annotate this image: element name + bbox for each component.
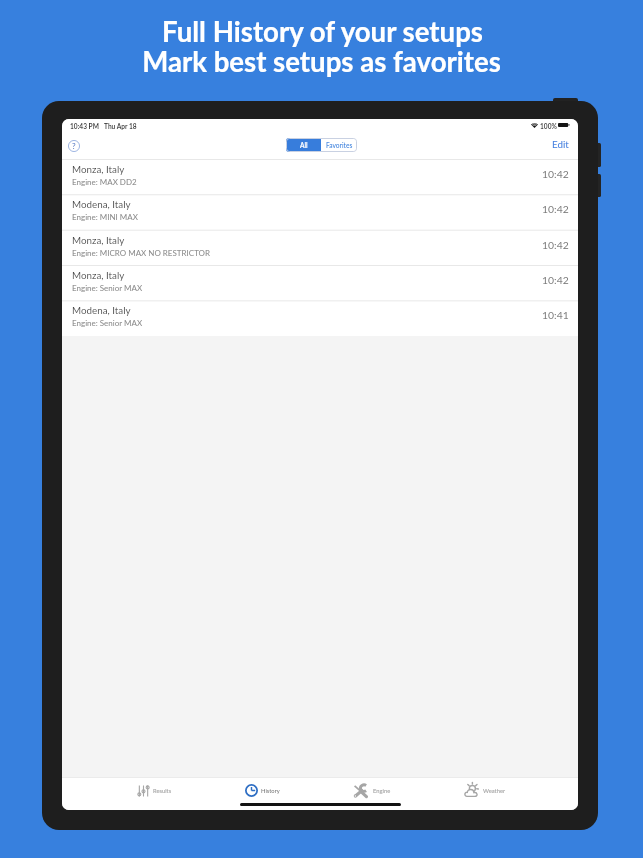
- staticText: 10:41: [542, 309, 569, 321]
- staticText: Engine: MICRO MAX NO RESTRICTOR: [72, 248, 211, 258]
- button[interactable]: Modena, Italy: [62, 194, 578, 229]
- button[interactable]: Monza, Italy: [62, 159, 578, 194]
- button[interactable]: Engine: [353, 783, 391, 798]
- staticText: Modena, Italy: [72, 198, 131, 210]
- button[interactable]: Modena, Italy: [62, 300, 578, 335]
- staticText: Monza, Italy: [72, 163, 125, 175]
- staticText: 10:42: [542, 168, 569, 180]
- staticText: 10:43 PM: [70, 122, 99, 130]
- staticText: Mark best setups as favorites: [142, 45, 501, 78]
- staticText: Engine: Senior MAX: [72, 283, 143, 293]
- button[interactable]: Favorites: [321, 138, 357, 152]
- staticText: All: [300, 141, 308, 149]
- staticText: Engine: [373, 787, 391, 794]
- button[interactable]: Results: [137, 783, 172, 798]
- staticText: History: [261, 787, 280, 794]
- staticText: Monza, Italy: [72, 269, 125, 281]
- staticText: Edit: [552, 138, 569, 150]
- staticText: 10:42: [542, 239, 569, 251]
- staticText: ?: [72, 141, 76, 151]
- staticText: Results: [153, 787, 172, 794]
- staticText: Weather: [483, 787, 506, 794]
- button[interactable]: Edit: [548, 134, 573, 154]
- staticText: Modena, Italy: [72, 304, 131, 316]
- staticText: 100%: [540, 122, 557, 130]
- staticText: Full History of your setups: [162, 15, 483, 48]
- staticText: Thu Apr 18: [104, 122, 137, 130]
- staticText: Engine: MINI MAX: [72, 212, 138, 222]
- staticText: Engine: MAX DD2: [72, 177, 137, 187]
- staticText: Monza, Italy: [72, 234, 125, 246]
- button[interactable]: Help: [63, 135, 84, 156]
- staticText: 10:42: [542, 203, 569, 215]
- button[interactable]: Monza, Italy: [62, 265, 578, 300]
- staticText: 10:42: [542, 274, 569, 286]
- button[interactable]: Monza, Italy: [62, 230, 578, 265]
- staticText: Engine: Senior MAX: [72, 318, 143, 328]
- button[interactable]: History: [245, 783, 280, 798]
- button[interactable]: Weather: [464, 783, 506, 798]
- button[interactable]: All: [286, 138, 321, 152]
- staticText: Favorites: [326, 141, 353, 149]
